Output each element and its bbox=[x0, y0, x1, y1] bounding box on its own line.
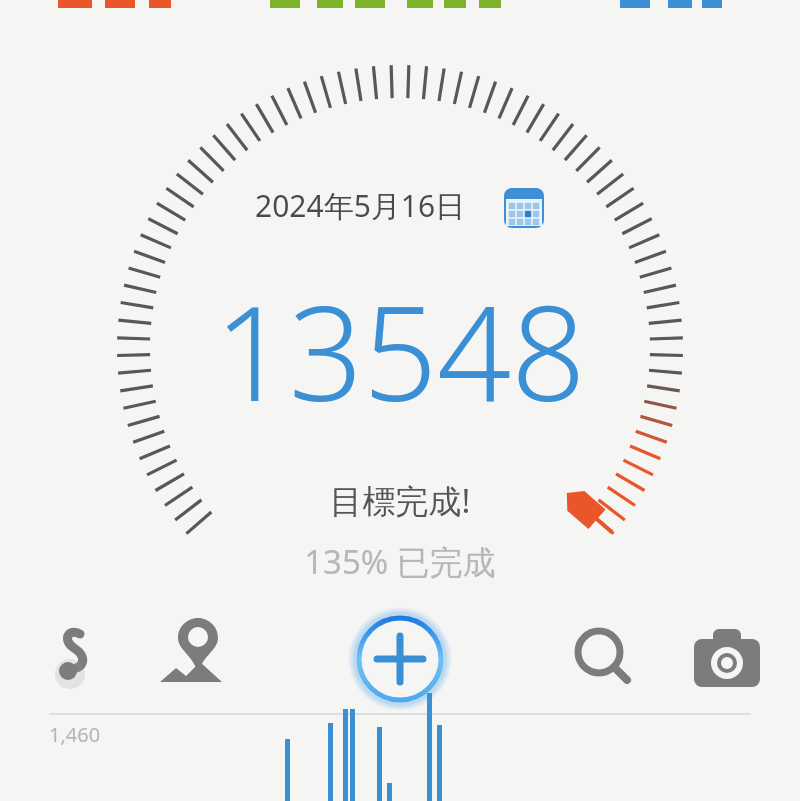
button[interactable]: Date bbox=[180, 170, 580, 240]
button[interactable]: Add bbox=[320, 599, 480, 719]
staticText: 1,460 bbox=[49, 721, 101, 748]
staticText: 2024年5月16日 bbox=[255, 185, 466, 226]
staticText: 13548 bbox=[0, 262, 800, 412]
button[interactable]: Search bbox=[480, 606, 640, 714]
button[interactable]: Places bbox=[160, 606, 320, 714]
staticText: 135% 已完成 bbox=[0, 539, 800, 585]
button[interactable]: Camera bbox=[640, 606, 800, 714]
staticText: 目標完成! bbox=[0, 478, 800, 524]
button[interactable]: Route bbox=[0, 606, 160, 714]
